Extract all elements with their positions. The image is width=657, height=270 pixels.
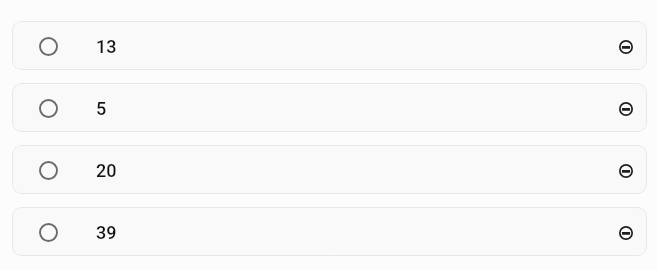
button[interactable]: Select <box>38 160 58 180</box>
staticText: 39 <box>96 222 117 243</box>
button[interactable]: Select <box>12 145 647 194</box>
button[interactable]: Remove <box>612 157 640 185</box>
button[interactable]: Remove <box>612 219 640 247</box>
button[interactable]: Select <box>12 83 647 132</box>
staticText: 13 <box>96 36 117 57</box>
button[interactable]: Select <box>38 98 58 118</box>
staticText: 20 <box>96 160 117 181</box>
button[interactable]: Remove <box>612 95 640 123</box>
button[interactable]: Select <box>12 21 647 70</box>
button[interactable]: Select <box>38 222 58 242</box>
button[interactable]: Select <box>12 207 647 256</box>
staticText: 5 <box>96 98 107 119</box>
button[interactable]: Select <box>38 36 58 56</box>
button[interactable]: Remove <box>612 33 640 61</box>
